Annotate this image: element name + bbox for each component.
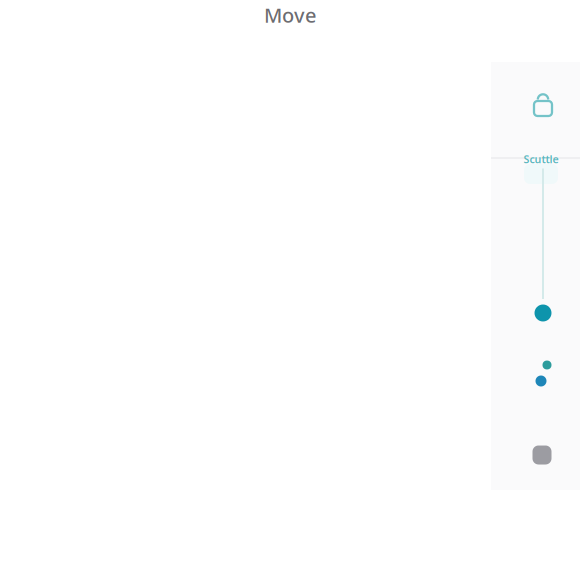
button[interactable]: Lock (523, 83, 563, 123)
button[interactable]: Current step (529, 299, 557, 327)
staticText: Move (264, 2, 316, 28)
staticText: Scuttle (523, 152, 558, 166)
button[interactable]: More (527, 440, 557, 470)
button[interactable]: Move (190, 4, 390, 26)
